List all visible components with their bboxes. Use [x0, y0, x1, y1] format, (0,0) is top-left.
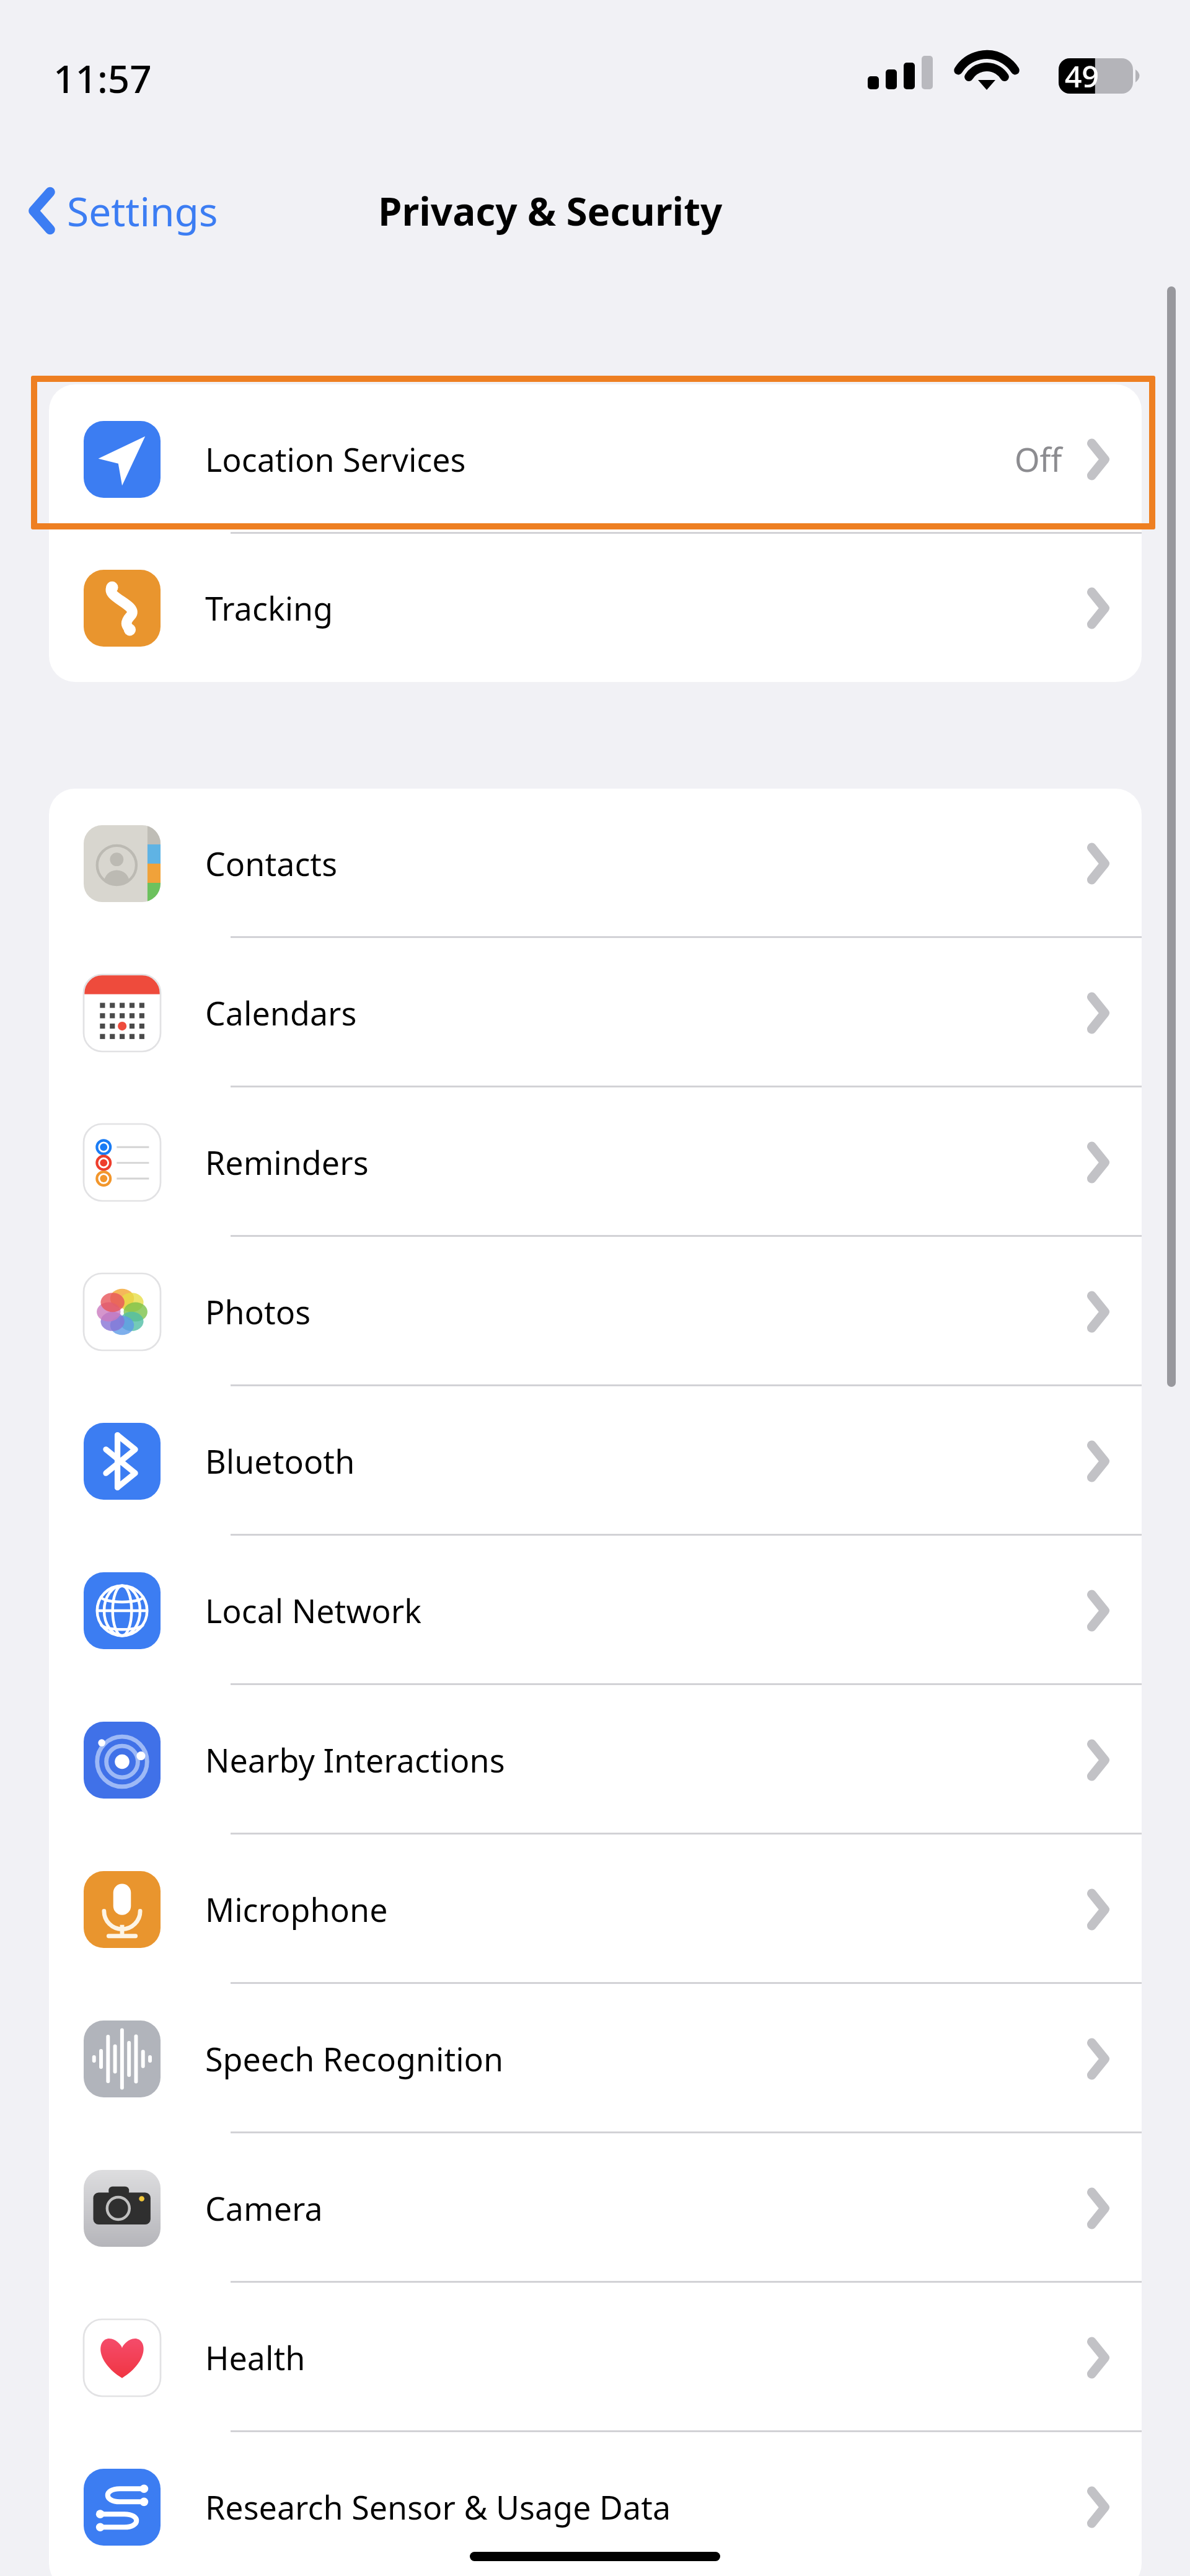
staticText: Speech Recognition [205, 2037, 504, 2081]
button[interactable]: Contacts [49, 789, 1142, 938]
staticText: Local Network [205, 1588, 421, 1632]
button[interactable]: Local Network [49, 1536, 1142, 1685]
other: Location Services [84, 421, 161, 498]
button[interactable]: Reminders [49, 1087, 1142, 1237]
staticText: Contacts [205, 841, 338, 885]
staticText: Tracking [205, 586, 333, 630]
staticText: 11:57 [53, 52, 152, 104]
button[interactable]: Speech Recognition [49, 1984, 1142, 2133]
button[interactable]: Settings [19, 170, 227, 252]
staticText: Calendars [205, 991, 357, 1035]
button[interactable]: Research Sensor & Usage Data [49, 2432, 1142, 2576]
staticText: Bluetooth [205, 1439, 355, 1483]
staticText: Privacy & Security [378, 185, 723, 237]
button[interactable]: Nearby Interactions [49, 1685, 1142, 1835]
button[interactable]: Camera [49, 2133, 1142, 2283]
staticText: Photos [205, 1290, 311, 1334]
staticText: Research Sensor & Usage Data [205, 2485, 671, 2529]
staticText: Reminders [205, 1140, 369, 1184]
button[interactable]: Health [49, 2283, 1142, 2432]
staticText: Nearby Interactions [205, 1738, 505, 1782]
staticText: 49 [1065, 56, 1099, 96]
staticText: Health [205, 2335, 306, 2379]
staticText: Off [1015, 437, 1062, 481]
button[interactable]: Microphone [49, 1835, 1142, 1984]
button[interactable]: Bluetooth [49, 1386, 1142, 1536]
staticText: Camera [205, 2186, 323, 2230]
staticText: Microphone [205, 1887, 388, 1931]
button[interactable]: Calendars [49, 938, 1142, 1087]
button[interactable]: Photos [49, 1237, 1142, 1386]
other: Tracking [84, 570, 161, 647]
button[interactable]: Location Services [49, 384, 1142, 534]
button[interactable]: Tracking [49, 534, 1142, 682]
staticText: Location Services [205, 437, 466, 481]
staticText: Settings [67, 184, 218, 238]
